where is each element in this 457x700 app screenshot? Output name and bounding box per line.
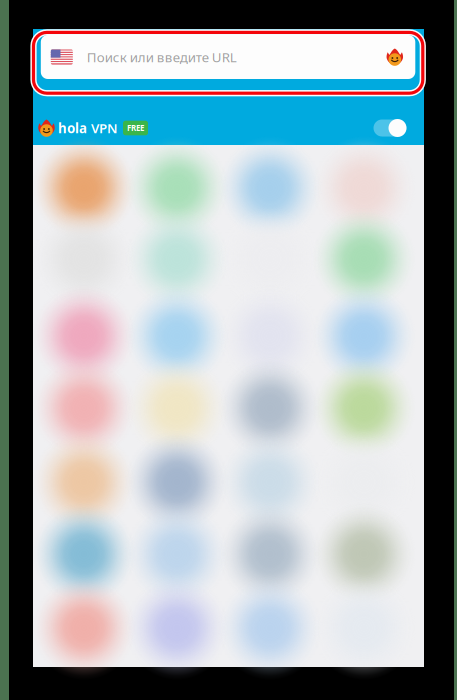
staticText: Поиск или введите URL xyxy=(87,48,237,66)
staticText: hola xyxy=(58,119,87,137)
button[interactable]: hola xyxy=(38,119,148,137)
staticText: VPN xyxy=(91,119,118,137)
button[interactable]: Поиск или введите URL xyxy=(41,35,415,79)
staticText: FREE xyxy=(127,123,144,133)
button[interactable]: Turn VPN off xyxy=(371,115,409,141)
